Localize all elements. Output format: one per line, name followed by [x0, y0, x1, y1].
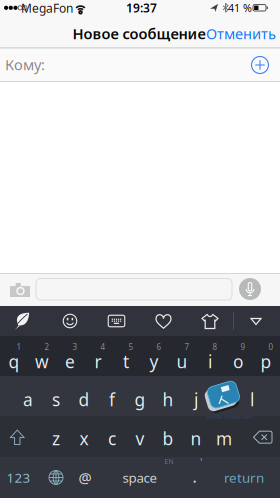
staticText: j — [194, 388, 198, 411]
staticText: Новое сообщение — [72, 24, 205, 43]
button[interactable]: u — [0, 0, 26, 22]
button[interactable]: x — [0, 0, 26, 22]
staticText: EN — [164, 457, 173, 466]
staticText: MegaFon — [21, 0, 73, 16]
staticText: 0 — [268, 342, 273, 352]
staticText: ' — [200, 455, 202, 469]
button[interactable]: Sticker Shop — [202, 314, 218, 328]
staticText: mobile-review.com — [206, 413, 252, 421]
staticText: b — [162, 427, 173, 450]
staticText: 2 — [44, 342, 49, 352]
staticText: o — [233, 350, 243, 373]
button[interactable]: Camera — [10, 283, 30, 297]
staticText: c — [108, 427, 116, 450]
button[interactable]: h — [0, 0, 26, 22]
staticText: 7 — [184, 342, 189, 352]
button[interactable]: r — [0, 0, 26, 22]
button[interactable]: t — [0, 0, 26, 22]
button[interactable]: 123 — [0, 0, 40, 22]
button[interactable]: d — [0, 0, 26, 22]
staticText: h — [162, 388, 173, 411]
staticText: p — [260, 350, 271, 373]
staticText: v — [135, 427, 144, 450]
button[interactable]: g — [0, 0, 26, 22]
button[interactable]: z — [0, 0, 26, 22]
button[interactable]: @ — [0, 0, 30, 22]
staticText: 4 — [100, 342, 105, 352]
staticText: return — [224, 469, 264, 486]
staticText: 1 — [16, 342, 21, 352]
staticText: 3 — [72, 342, 77, 352]
button[interactable]: l — [0, 0, 26, 22]
staticText: e — [65, 350, 75, 373]
button[interactable]: e — [0, 0, 26, 22]
staticText: i — [208, 350, 212, 373]
staticText: g — [134, 388, 145, 411]
staticText: @ — [78, 468, 91, 487]
button[interactable]: v — [0, 0, 26, 22]
staticText: f — [109, 388, 115, 411]
button[interactable]: Next Keyboard — [49, 470, 63, 484]
button[interactable]: f — [0, 0, 26, 22]
button[interactable]: a — [0, 0, 26, 22]
button[interactable]: Add Contact — [250, 55, 270, 75]
staticText: a — [23, 388, 33, 411]
staticText: space — [122, 469, 157, 486]
staticText: y — [149, 350, 158, 373]
button[interactable]: . — [0, 0, 16, 22]
button[interactable]: q — [0, 0, 26, 22]
button[interactable]: Voice Message — [238, 277, 262, 301]
staticText: x — [79, 427, 88, 450]
button[interactable]: Shift — [10, 430, 24, 444]
button[interactable]: c — [0, 0, 26, 22]
staticText: . — [192, 466, 196, 487]
button[interactable]: b — [0, 0, 26, 22]
staticText: 5 — [128, 342, 133, 352]
staticText: 41 % — [228, 1, 252, 15]
staticText: t — [123, 350, 129, 373]
staticText: z — [52, 427, 60, 450]
staticText: u — [176, 350, 187, 373]
button[interactable]: return — [0, 0, 60, 22]
button[interactable]: j — [0, 0, 26, 22]
staticText: r — [94, 350, 101, 373]
staticText: w — [35, 350, 49, 373]
staticText: 8 — [212, 342, 217, 352]
staticText: 123 — [6, 469, 30, 486]
staticText: n — [190, 427, 201, 450]
staticText: d — [78, 388, 89, 411]
staticText: k — [219, 388, 228, 411]
button[interactable]: Отменить — [0, 0, 80, 22]
button[interactable]: m — [0, 0, 26, 22]
staticText: q — [8, 350, 19, 373]
staticText: 9 — [240, 342, 245, 352]
staticText: s — [52, 388, 60, 411]
button[interactable]: p — [0, 0, 26, 22]
button[interactable]: Hide Keyboard — [251, 318, 261, 324]
button[interactable]: Favourites — [156, 315, 171, 328]
button[interactable]: space — [0, 0, 60, 22]
staticText: 19:37 — [126, 0, 157, 16]
button[interactable]: Message — [36, 278, 232, 300]
staticText: l — [250, 388, 254, 411]
button[interactable]: o — [0, 0, 26, 22]
button[interactable]: w — [0, 0, 26, 22]
staticText: m — [216, 427, 232, 450]
button[interactable]: i — [0, 0, 26, 22]
staticText: Отменить — [206, 24, 276, 43]
button[interactable]: n — [0, 0, 26, 22]
button[interactable]: s — [0, 0, 26, 22]
button[interactable]: Keyboard — [108, 315, 125, 327]
button[interactable]: y — [0, 0, 26, 22]
button[interactable]: k — [0, 0, 26, 22]
button[interactable]: Delete — [253, 431, 272, 443]
staticText: Кому: — [5, 55, 45, 74]
staticText: 6 — [156, 342, 161, 352]
button[interactable]: Stickers — [13, 312, 30, 330]
button[interactable]: Emoji — [63, 314, 77, 328]
